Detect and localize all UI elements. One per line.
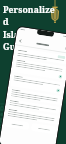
button[interactable]: Play audio [10,74,63,94]
button[interactable]: Back [0,26,66,144]
staticText: Islamic Guidance [3,29,59,53]
button[interactable] [57,55,66,59]
button[interactable]: Back [18,39,23,43]
button[interactable] [31,123,56,135]
other: Lantern decoration [49,0,61,26]
staticText: Personalized [3,4,59,28]
button[interactable] [4,118,30,130]
button[interactable] [9,88,61,105]
button[interactable]: Menu [64,46,66,50]
button[interactable] [5,108,58,125]
button[interactable]: Play audio [12,58,66,80]
button[interactable]: Play audio [56,88,60,93]
button[interactable]: Play audio [58,74,63,79]
button[interactable] [7,99,60,114]
button[interactable] [15,47,66,64]
